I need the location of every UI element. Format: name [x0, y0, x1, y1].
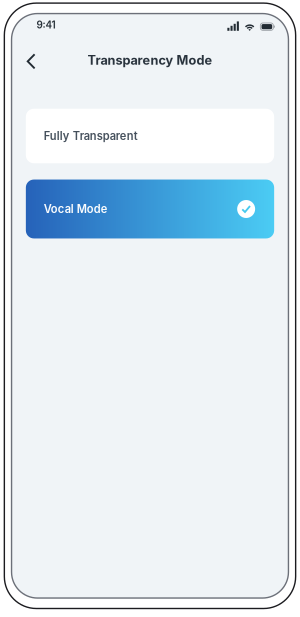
- button[interactable]: Back: [23, 46, 47, 76]
- staticText: Fully Transparent: [44, 129, 138, 143]
- staticText: 9:41: [37, 19, 56, 31]
- staticText: Transparency Mode: [87, 52, 212, 68]
- staticText: Vocal Mode: [44, 202, 108, 216]
- button[interactable]: Vocal Mode: [26, 180, 274, 238]
- button[interactable]: Fully Transparent: [26, 109, 274, 163]
